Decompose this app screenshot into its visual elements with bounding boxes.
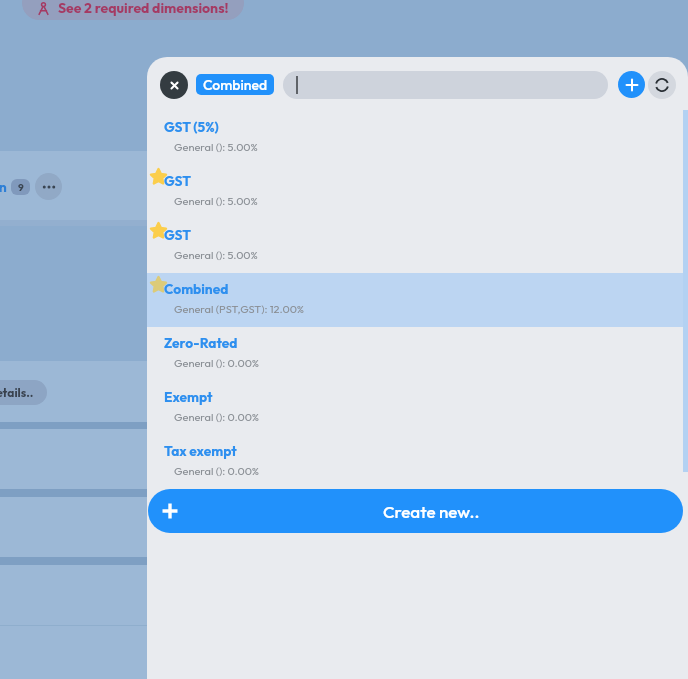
staticText: GST bbox=[164, 172, 191, 189]
staticText: General (PST,GST): 12.00% bbox=[174, 302, 305, 316]
staticText: details.. bbox=[0, 385, 34, 400]
button[interactable]: Combined bbox=[196, 74, 274, 95]
staticText: Combined bbox=[203, 76, 268, 94]
staticText: General (): 0.00% bbox=[174, 410, 260, 424]
button[interactable]: Refresh bbox=[648, 71, 676, 99]
staticText: Exempt bbox=[164, 388, 213, 405]
button[interactable]: Zero-Rated bbox=[147, 327, 688, 381]
staticText: Tax exempt bbox=[164, 442, 237, 459]
staticText: GST bbox=[164, 226, 191, 243]
staticText: General (): 5.00% bbox=[174, 140, 258, 154]
staticText: General (): 0.00% bbox=[174, 356, 260, 370]
button[interactable]: GST bbox=[147, 165, 688, 219]
button[interactable]: Combined bbox=[147, 273, 688, 327]
button[interactable]: Tax exempt bbox=[147, 435, 688, 489]
staticText: General (): 0.00% bbox=[174, 464, 260, 478]
staticText: General (): 5.00% bbox=[174, 194, 258, 208]
button[interactable]: Add bbox=[618, 71, 645, 98]
staticText: Warren bbox=[0, 178, 7, 196]
staticText: General (): 5.00% bbox=[174, 248, 258, 262]
button[interactable]: See 2 required dimensions! bbox=[22, 0, 244, 20]
staticText: GST (5%) bbox=[164, 118, 219, 135]
button[interactable]: details.. bbox=[0, 380, 47, 405]
button[interactable]: GST bbox=[147, 219, 688, 273]
button[interactable]: More options bbox=[35, 173, 62, 200]
button[interactable]: Close bbox=[160, 71, 188, 99]
staticText: Create new.. bbox=[383, 501, 480, 522]
button[interactable]: GST (5%) bbox=[147, 111, 688, 165]
staticText: Combined bbox=[164, 280, 229, 297]
staticText: Zero-Rated bbox=[164, 334, 238, 351]
button[interactable]: Create new.. bbox=[148, 489, 683, 533]
button[interactable] bbox=[283, 71, 608, 99]
staticText: 9 bbox=[18, 181, 24, 194]
staticText: See 2 required dimensions! bbox=[58, 0, 229, 17]
button[interactable]: 9 bbox=[11, 179, 30, 195]
button[interactable]: Exempt bbox=[147, 381, 688, 435]
